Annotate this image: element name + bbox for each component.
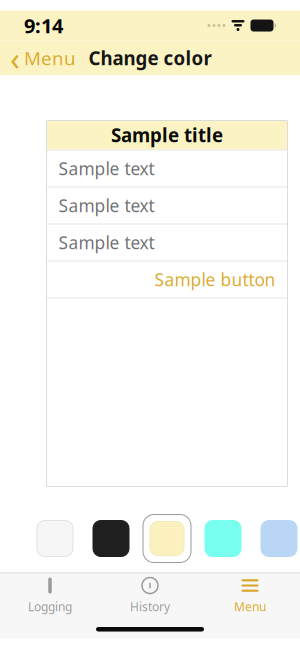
staticText: Logging: [28, 598, 72, 614]
staticText: History: [130, 598, 170, 614]
staticText: Menu: [24, 46, 76, 70]
button[interactable]: Select color: [87, 512, 135, 564]
staticText: ‹: [10, 37, 20, 79]
button[interactable]: Sample button: [46, 261, 287, 297]
staticText: Sample text: [58, 157, 154, 180]
button[interactable]: Select color: [199, 512, 247, 564]
staticText: Sample text: [58, 194, 154, 217]
staticText: Sample text: [58, 231, 154, 254]
button[interactable]: History: [100, 573, 200, 617]
staticText: Change color: [88, 46, 211, 70]
staticText: Menu: [234, 598, 266, 614]
staticText: Sample title: [111, 123, 223, 147]
button[interactable]: Select color: [143, 512, 191, 564]
button[interactable]: Menu: [200, 573, 300, 617]
staticText: Sample button: [154, 268, 275, 291]
button[interactable]: Select color: [31, 512, 79, 564]
staticText: 9:14: [24, 12, 63, 39]
button[interactable]: Logging: [0, 573, 100, 617]
button[interactable]: Select color: [255, 512, 300, 564]
button[interactable]: ‹: [0, 33, 86, 83]
